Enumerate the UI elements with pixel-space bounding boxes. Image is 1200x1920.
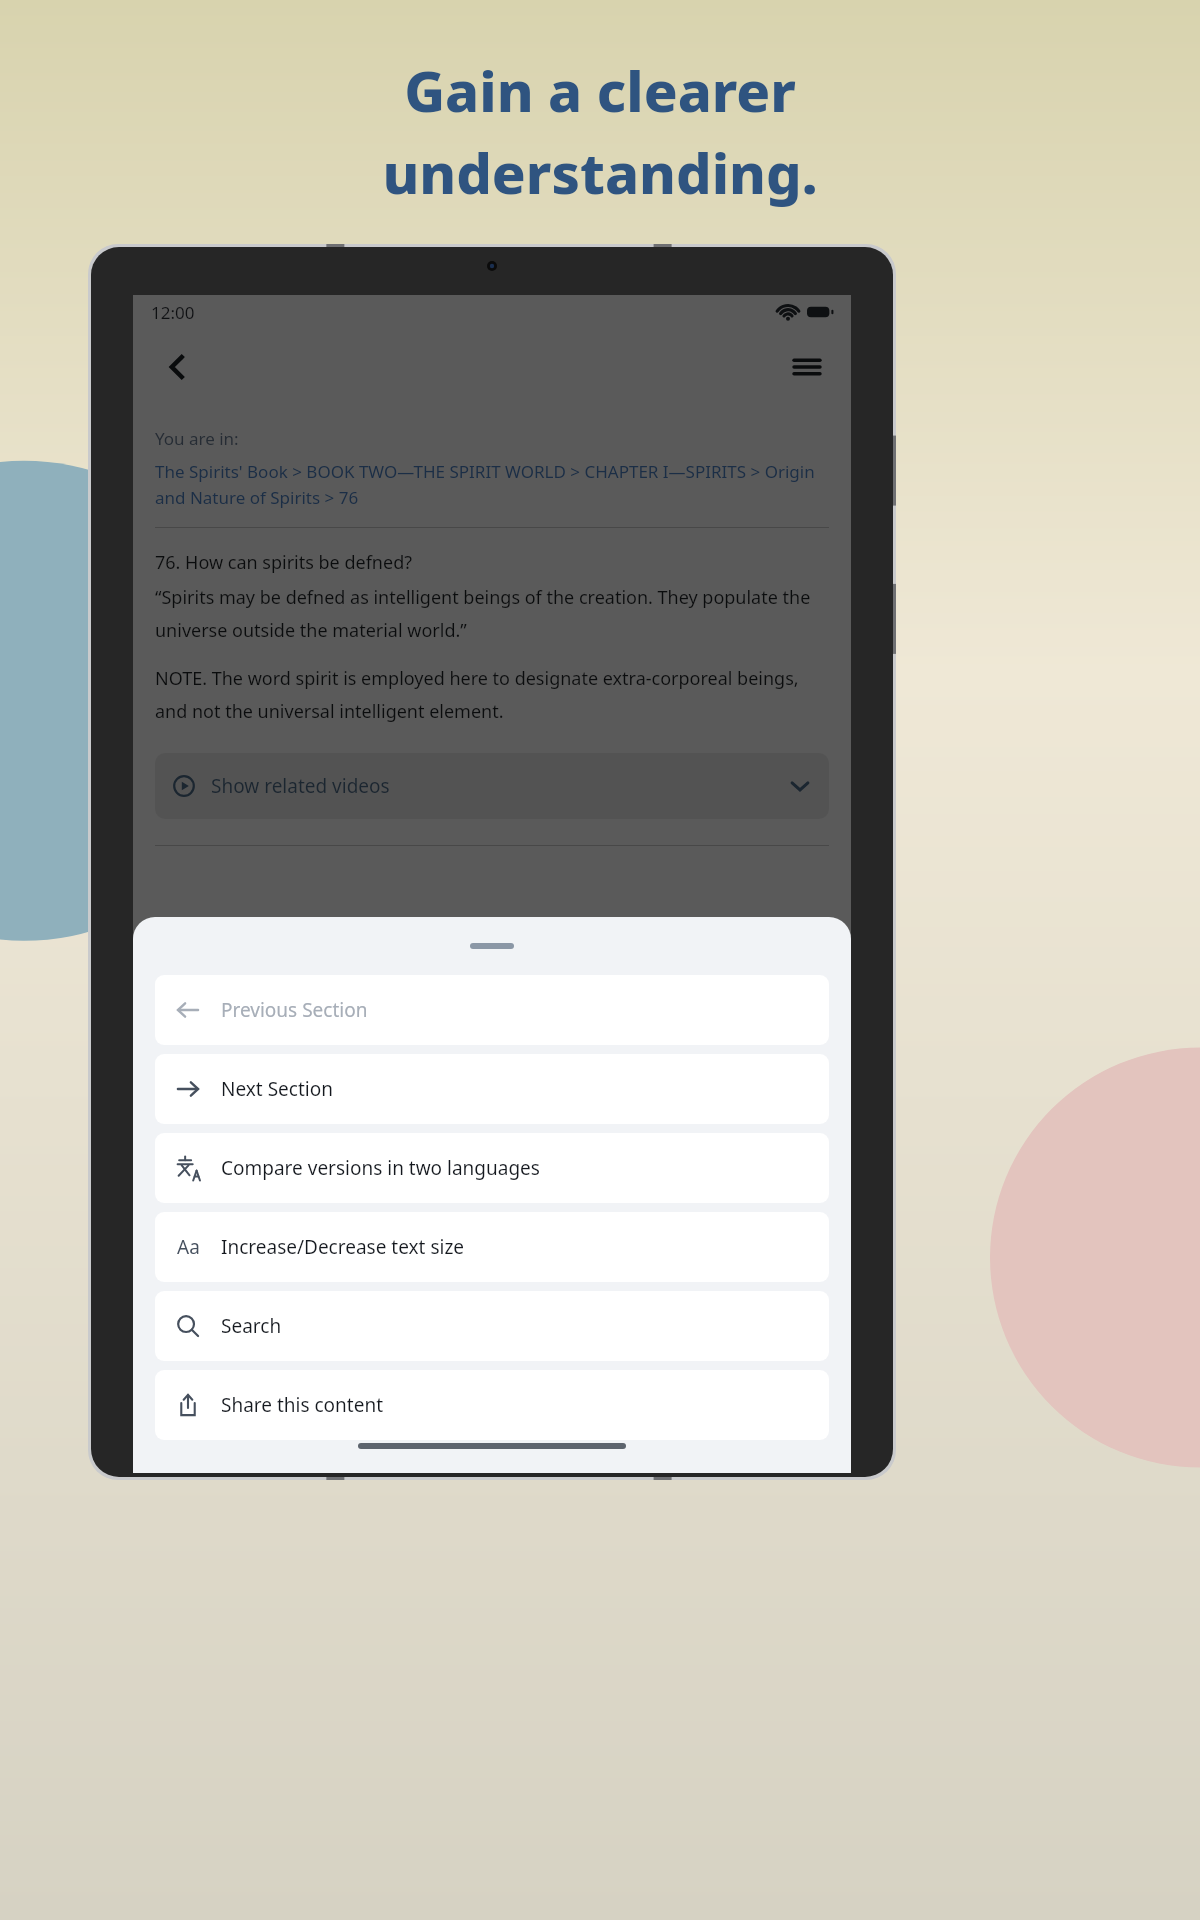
staticText: 76. How can spirits be defned? xyxy=(155,550,413,575)
button[interactable]: Show related videos xyxy=(155,753,829,819)
button[interactable]: Aa xyxy=(155,1212,829,1282)
button[interactable]: Next Section xyxy=(155,1054,829,1124)
staticText: Next Section xyxy=(221,1076,333,1102)
staticText: Aa xyxy=(177,1234,200,1260)
staticText: Show related videos xyxy=(211,773,390,799)
button[interactable]: Menu xyxy=(783,343,831,391)
button[interactable]: Search xyxy=(155,1291,829,1361)
button[interactable]: Previous Section xyxy=(155,975,829,1045)
staticText: Share this content xyxy=(221,1392,384,1418)
staticText: The Spirits' Book > BOOK TWO—THE SPIRIT … xyxy=(155,460,829,509)
staticText: understanding. xyxy=(382,134,818,210)
button[interactable]: Back xyxy=(153,343,201,391)
staticText: Compare versions in two languages xyxy=(221,1155,540,1181)
staticText: You are in: xyxy=(155,427,239,450)
staticText: Gain a clearer xyxy=(404,52,796,128)
button[interactable]: Compare versions in two languages xyxy=(155,1133,829,1203)
staticText: 12:00 xyxy=(151,301,195,324)
staticText: “Spirits may be defned as intelligent be… xyxy=(155,585,829,642)
staticText: Increase/Decrease text size xyxy=(221,1234,465,1260)
staticText: Previous Section xyxy=(221,997,368,1023)
staticText: NOTE. The word spirit is employed here t… xyxy=(155,666,829,723)
staticText: Search xyxy=(221,1313,282,1339)
button[interactable]: Share this content xyxy=(155,1370,829,1440)
